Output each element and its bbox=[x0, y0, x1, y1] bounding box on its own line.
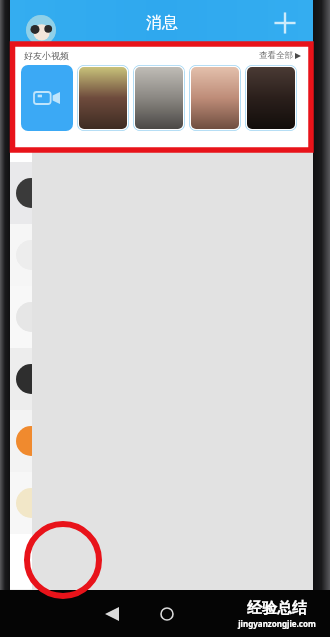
staticText: 经验总结 bbox=[247, 599, 307, 618]
button[interactable]: 3 bbox=[11, 590, 85, 637]
button[interactable]: Record video bbox=[21, 65, 73, 131]
button[interactable]: 动态 bbox=[238, 590, 312, 637]
staticText: 动态 bbox=[268, 622, 283, 631]
staticText: 3 bbox=[58, 594, 63, 604]
button[interactable]: Friend video bbox=[133, 65, 185, 131]
button[interactable]: Friend video bbox=[245, 65, 297, 131]
button[interactable]: Friend video bbox=[189, 65, 241, 131]
button[interactable]: Friend video bbox=[77, 65, 129, 131]
button[interactable]: Profile bbox=[26, 15, 56, 45]
staticText: 查看全部 bbox=[259, 50, 293, 61]
staticText: 消息 bbox=[146, 13, 178, 33]
button[interactable]: Add bbox=[269, 7, 301, 39]
staticText: jingyanzongjie.com bbox=[238, 618, 316, 629]
button[interactable]: 联系人 bbox=[87, 590, 161, 637]
button[interactable]: 查看全部 bbox=[259, 50, 301, 61]
staticText: 好友小视频 bbox=[24, 50, 69, 61]
button[interactable]: 看点 bbox=[162, 590, 236, 637]
